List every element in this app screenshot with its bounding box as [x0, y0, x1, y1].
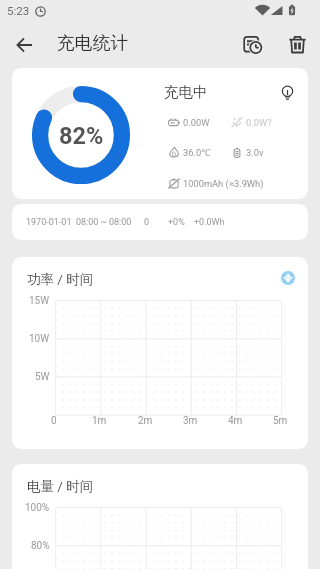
staticText: 15W	[29, 295, 50, 307]
staticText: 3m	[183, 415, 198, 427]
staticText: 0.0W?	[246, 117, 272, 128]
staticText: 4m	[228, 415, 243, 427]
staticText: 5W	[35, 371, 50, 383]
staticText: 80%	[31, 540, 50, 552]
staticText: 5:23	[7, 4, 30, 17]
button[interactable]: Delete	[277, 24, 317, 64]
staticText: 100%	[25, 502, 50, 514]
staticText: 3.0v	[246, 147, 264, 158]
staticText: 0	[144, 217, 150, 228]
staticText: 充电统计	[57, 32, 129, 54]
button[interactable]: Back	[4, 25, 44, 65]
staticText: +0.0Wh	[194, 217, 225, 228]
button[interactable]: Switch chart	[275, 265, 301, 291]
staticText: 1970-01-01 08:00 ~ 08:00	[26, 217, 132, 228]
staticText: 5m	[273, 415, 288, 427]
staticText: 82%	[59, 122, 104, 150]
staticText: +0%	[168, 217, 185, 228]
staticText: 1000mAh (≈3.9Wh)	[183, 178, 264, 189]
button[interactable]: History	[233, 24, 273, 64]
button[interactable]: 1970-01-01 08:00 ~ 08:00	[12, 204, 308, 240]
staticText: 0	[51, 415, 57, 427]
staticText: 0.00W	[183, 117, 210, 128]
staticText: 功率 / 时间	[27, 271, 94, 288]
staticText: 2m	[138, 415, 153, 427]
staticText: 10W	[29, 333, 50, 345]
staticText: 1m	[92, 415, 107, 427]
staticText: 充电中	[164, 83, 208, 101]
button[interactable]: Tips	[275, 81, 299, 105]
staticText: 电量 / 时间	[27, 478, 94, 495]
button[interactable]: 82%	[12, 68, 308, 199]
staticText: 36.0℃	[183, 146, 211, 159]
